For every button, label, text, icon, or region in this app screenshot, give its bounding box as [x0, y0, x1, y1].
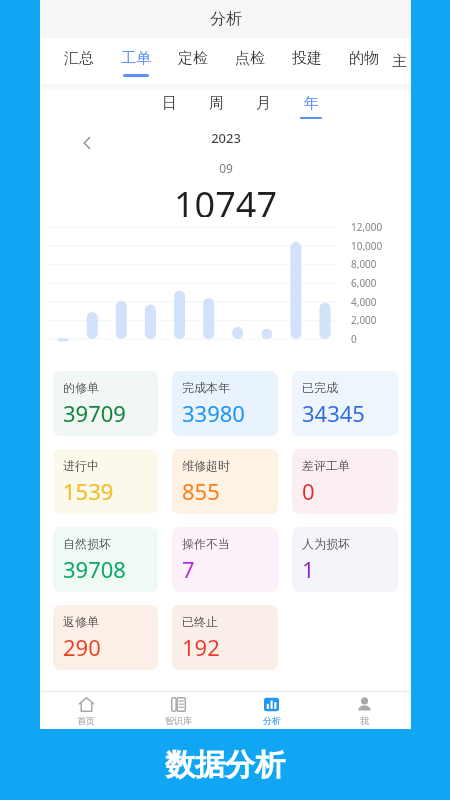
button[interactable]: 定检	[164, 38, 221, 84]
staticText: 已完成	[302, 380, 338, 395]
staticText: 分析	[210, 9, 242, 29]
staticText: 2,000	[351, 313, 377, 327]
button[interactable]: Previous	[74, 130, 100, 156]
staticText: 分析	[263, 715, 281, 726]
staticText: 1539	[63, 476, 114, 506]
staticText: 2023	[211, 129, 241, 147]
staticText: 汇总	[64, 49, 94, 68]
button[interactable]: 的物	[335, 38, 392, 84]
button[interactable]: 完成本年	[172, 371, 278, 436]
staticText: 年	[304, 94, 319, 113]
button[interactable]: 差评工单	[292, 449, 398, 514]
button[interactable]: 我	[318, 692, 411, 729]
staticText: 4,000	[351, 295, 377, 309]
staticText: 39708	[63, 554, 126, 584]
staticText: 10,000	[351, 239, 383, 253]
button[interactable]: 首页	[40, 692, 132, 729]
staticText: 09	[219, 160, 233, 176]
button[interactable]: 汇总	[50, 38, 107, 84]
button[interactable]: 维修超时	[172, 449, 278, 514]
staticText: 0	[302, 476, 315, 506]
button[interactable]: 分析	[225, 692, 318, 729]
staticText: 月	[256, 94, 271, 113]
staticText: 12,000	[351, 220, 383, 234]
staticText: 周	[209, 94, 224, 113]
button[interactable]: 投建	[278, 38, 335, 84]
button[interactable]: 操作不当	[172, 527, 278, 592]
staticText: 日	[162, 94, 177, 113]
staticText: 进行中	[63, 458, 99, 473]
button[interactable]: 年	[287, 94, 334, 119]
button[interactable]: 进行中	[53, 449, 158, 514]
staticText: 33980	[182, 398, 245, 428]
button[interactable]: 月	[240, 94, 287, 119]
button[interactable]: 返修单	[53, 605, 158, 670]
staticText: 自然损坏	[63, 536, 111, 551]
button[interactable]: 智识库	[132, 692, 225, 729]
staticText: 10747	[174, 180, 277, 217]
staticText: 290	[63, 632, 101, 662]
staticText: 返修单	[63, 614, 99, 629]
staticText: 8,000	[351, 257, 377, 271]
staticText: 主	[392, 52, 406, 71]
button[interactable]: 自然损坏	[53, 527, 158, 592]
button[interactable]: 人为损坏	[292, 527, 398, 592]
button[interactable]: 周	[193, 94, 240, 119]
staticText: 6,000	[351, 276, 377, 290]
staticText: 7	[182, 554, 195, 584]
staticText: 已终止	[182, 614, 218, 629]
staticText: 数据分析	[165, 746, 285, 784]
button[interactable]: 已完成	[292, 371, 398, 436]
staticText: 操作不当	[182, 536, 230, 551]
button[interactable]: 点检	[221, 38, 278, 84]
staticText: 工单	[121, 49, 151, 68]
button[interactable]: 主	[392, 38, 406, 84]
button[interactable]: 的修单	[53, 371, 158, 436]
staticText: 0	[351, 332, 357, 346]
staticText: 39709	[63, 398, 126, 428]
button[interactable]: 工单	[107, 38, 164, 84]
staticText: 的物	[349, 49, 379, 68]
staticText: 定检	[178, 49, 208, 68]
staticText: 首页	[77, 715, 95, 726]
staticText: 维修超时	[182, 458, 230, 473]
button[interactable]: 日	[146, 94, 193, 119]
staticText: 投建	[292, 49, 322, 68]
staticText: 1	[302, 554, 315, 584]
staticText: 人为损坏	[302, 536, 350, 551]
staticText: 智识库	[165, 715, 192, 726]
staticText: 192	[182, 632, 220, 662]
staticText: 差评工单	[302, 458, 350, 473]
staticText: 的修单	[63, 380, 99, 395]
staticText: 点检	[235, 49, 265, 68]
staticText: 完成本年	[182, 380, 230, 395]
staticText: 34345	[302, 398, 365, 428]
staticText: 我	[360, 715, 369, 726]
button[interactable]: 已终止	[172, 605, 278, 670]
staticText: 855	[182, 476, 220, 506]
